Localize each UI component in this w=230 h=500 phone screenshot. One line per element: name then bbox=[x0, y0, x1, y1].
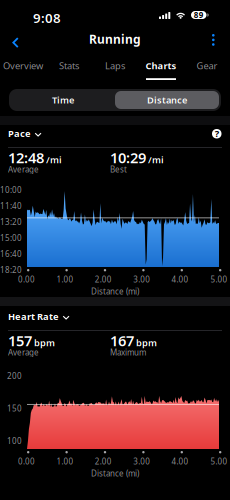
staticText: Heart Rate bbox=[8, 310, 59, 323]
staticText: 5.00 bbox=[210, 274, 227, 285]
staticText: 4.00 bbox=[172, 274, 189, 285]
staticText: Best bbox=[110, 164, 127, 175]
staticText: 3.00 bbox=[133, 274, 150, 285]
staticText: 18:20 bbox=[0, 265, 22, 275]
staticText: 1.00 bbox=[56, 456, 73, 467]
staticText: Overview bbox=[3, 59, 43, 72]
button[interactable]: Pace bbox=[8, 128, 42, 139]
staticText: Stats bbox=[59, 59, 79, 72]
staticText: 3.00 bbox=[133, 456, 150, 467]
staticText: Gear bbox=[196, 59, 217, 72]
button[interactable]: Charts bbox=[138, 56, 184, 80]
staticText: 200 bbox=[7, 371, 22, 381]
button[interactable]: Gear bbox=[184, 56, 230, 80]
button[interactable]: Running bbox=[0, 33, 230, 45]
staticText: 13:20 bbox=[0, 217, 22, 227]
staticText: 157 bbox=[8, 331, 32, 350]
staticText: 100 bbox=[7, 436, 22, 446]
button[interactable]: Laps bbox=[92, 56, 138, 80]
button[interactable]: Overview bbox=[0, 56, 46, 80]
staticText: Time bbox=[52, 94, 74, 106]
staticText: Pace bbox=[8, 127, 31, 140]
staticText: 10:00 bbox=[0, 185, 22, 195]
staticText: Charts bbox=[145, 59, 176, 72]
staticText: Distance bbox=[147, 94, 187, 106]
staticText: 2.00 bbox=[95, 456, 112, 467]
staticText: 12:48 bbox=[8, 148, 44, 167]
staticText: 11:40 bbox=[0, 201, 22, 211]
staticText: 167 bbox=[110, 331, 134, 350]
staticText: Average bbox=[8, 164, 39, 175]
button[interactable]: More options bbox=[208, 33, 219, 47]
button[interactable]: About pace chart bbox=[212, 129, 221, 138]
staticText: ? bbox=[215, 127, 219, 140]
staticText: 10:29 bbox=[110, 148, 146, 167]
staticText: Distance (mi) bbox=[91, 286, 139, 297]
staticText: 2.00 bbox=[95, 274, 112, 285]
staticText: /mi bbox=[148, 153, 164, 166]
staticText: 16:40 bbox=[0, 249, 22, 259]
staticText: Laps bbox=[105, 59, 125, 72]
staticText: 89 bbox=[194, 10, 204, 20]
button[interactable]: Heart Rate bbox=[8, 311, 70, 322]
staticText: 9:08 bbox=[33, 9, 61, 27]
staticText: 0.00 bbox=[18, 274, 35, 285]
staticText: 150 bbox=[7, 403, 22, 414]
staticText: Average bbox=[8, 347, 39, 358]
staticText: 4.00 bbox=[172, 456, 189, 467]
staticText: 15:00 bbox=[0, 233, 22, 243]
button[interactable]: Time bbox=[11, 91, 115, 109]
staticText: 0.00 bbox=[18, 456, 35, 467]
button[interactable]: Distance bbox=[115, 91, 219, 109]
staticText: 5.00 bbox=[210, 456, 227, 467]
staticText: /mi bbox=[46, 153, 62, 166]
staticText: Distance (mi) bbox=[91, 468, 139, 479]
staticText: Running bbox=[89, 31, 141, 47]
staticText: 1.00 bbox=[56, 274, 73, 285]
staticText: Maximum bbox=[110, 347, 146, 358]
button[interactable]: Stats bbox=[46, 56, 92, 80]
staticText: bpm bbox=[136, 336, 157, 349]
staticText: bpm bbox=[34, 336, 55, 349]
button[interactable]: Back bbox=[8, 33, 23, 52]
